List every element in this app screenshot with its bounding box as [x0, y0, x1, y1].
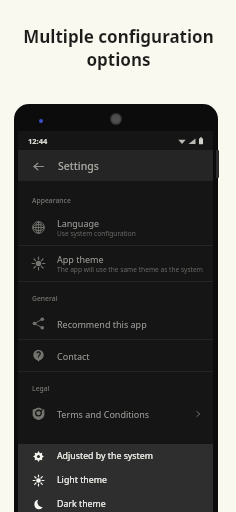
staticText: The app will use the same theme as the s…: [57, 265, 203, 274]
button[interactable]: Contact: [18, 340, 213, 371]
button[interactable]: Back: [28, 156, 48, 176]
staticText: Multiple configuration: [23, 25, 214, 48]
button[interactable]: App theme: [18, 246, 213, 281]
staticText: App theme: [57, 253, 104, 265]
staticText: Light theme: [57, 474, 107, 486]
staticText: Recommend this app: [57, 318, 147, 330]
staticText: Language: [57, 217, 100, 229]
staticText: Adjusted by the system: [57, 450, 153, 462]
staticText: Legal: [32, 384, 50, 393]
button[interactable]: Dark theme: [18, 492, 213, 512]
button[interactable]: Language: [18, 210, 213, 245]
staticText: Terms and Conditions: [57, 408, 150, 420]
staticText: General: [32, 294, 58, 303]
staticText: Appearance: [32, 196, 71, 205]
staticText: Contact: [57, 350, 90, 362]
staticText: Use system configuration: [57, 229, 136, 238]
staticText: 12:44: [28, 136, 48, 146]
button[interactable]: Terms and Conditions: [18, 398, 213, 429]
button[interactable]: Light theme: [18, 468, 213, 492]
button[interactable]: Adjusted by the system: [18, 444, 213, 468]
staticText: Settings: [58, 159, 99, 173]
button[interactable]: Recommend this app: [18, 308, 213, 339]
staticText: options: [86, 48, 151, 71]
staticText: Dark theme: [57, 498, 106, 510]
